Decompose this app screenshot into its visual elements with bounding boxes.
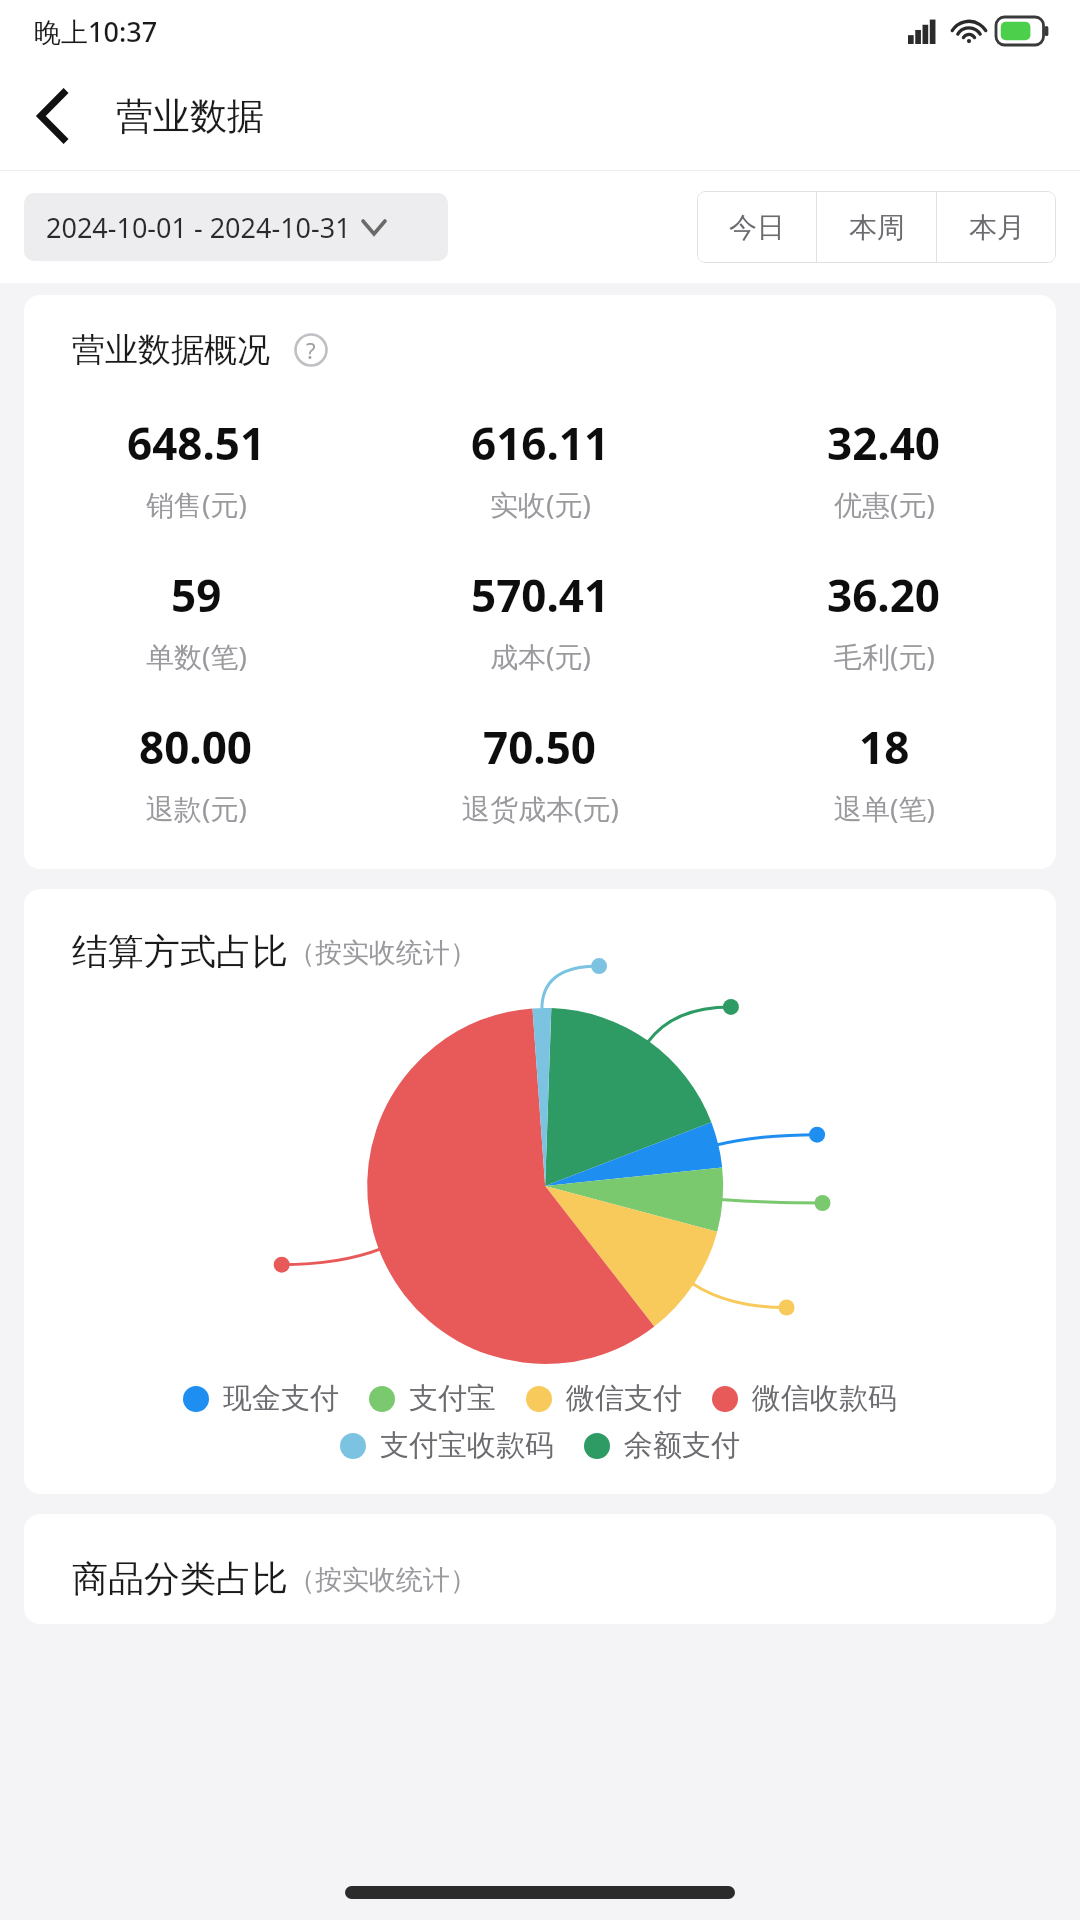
staticText: 80.00 xyxy=(139,717,253,777)
button[interactable]: 648.51 xyxy=(24,413,368,523)
staticText: 59 xyxy=(171,565,222,625)
staticText: 实收(元) xyxy=(490,485,591,523)
staticText: 648.51 xyxy=(127,413,266,473)
staticText: 616.11 xyxy=(471,413,610,473)
staticText: 毛利(元) xyxy=(834,637,935,675)
staticText: 36.20 xyxy=(827,565,941,625)
staticText: 余额支付 xyxy=(624,1427,740,1464)
staticText: 32.40 xyxy=(827,413,941,473)
staticText: 18 xyxy=(859,717,910,777)
staticText: 本月 xyxy=(969,210,1025,245)
staticText: 本周 xyxy=(849,210,905,245)
staticText: ? xyxy=(306,335,316,365)
button[interactable]: 微信支付 xyxy=(526,1380,682,1417)
button[interactable]: 今日 xyxy=(697,191,816,263)
staticText: 商品分类占比 xyxy=(72,1556,288,1601)
button[interactable]: 支付宝 xyxy=(369,1380,496,1417)
button[interactable]: 59 xyxy=(24,565,368,675)
button[interactable]: 18 xyxy=(712,717,1056,827)
staticText: 退货成本(元) xyxy=(462,789,619,827)
staticText: 今日 xyxy=(729,210,785,245)
staticText: 退款(元) xyxy=(146,789,247,827)
staticText: （按实收统计） xyxy=(288,936,477,970)
button[interactable]: 80.00 xyxy=(24,717,368,827)
button[interactable]: 570.41 xyxy=(368,565,712,675)
staticText: 70.50 xyxy=(483,717,597,777)
staticText: （按实收统计） xyxy=(288,1563,477,1597)
button[interactable]: 36.20 xyxy=(712,565,1056,675)
staticText: 晚上10:37 xyxy=(34,13,158,50)
staticText: 支付宝收款码 xyxy=(380,1427,554,1464)
staticText: 退单(笔) xyxy=(834,789,935,827)
button[interactable]: 返回 xyxy=(16,78,92,154)
staticText: 微信收款码 xyxy=(752,1380,897,1417)
staticText: 570.41 xyxy=(471,565,610,625)
button[interactable]: 616.11 xyxy=(368,413,712,523)
button[interactable]: 本周 xyxy=(817,191,936,263)
staticText: 2024-10-01 - 2024-10-31 xyxy=(46,209,351,246)
button[interactable]: 32.40 xyxy=(712,413,1056,523)
staticText: 营业数据概况 xyxy=(72,329,270,371)
staticText: 微信支付 xyxy=(566,1380,682,1417)
staticText: 销售(元) xyxy=(146,485,247,523)
button[interactable]: 70.50 xyxy=(368,717,712,827)
staticText: 结算方式占比 xyxy=(72,929,288,974)
staticText: 营业数据 xyxy=(116,93,264,140)
staticText: 优惠(元) xyxy=(834,485,935,523)
button[interactable]: 说明 xyxy=(294,333,328,367)
button[interactable]: 支付宝收款码 xyxy=(340,1427,554,1464)
button[interactable]: 微信收款码 xyxy=(712,1380,897,1417)
staticText: 现金支付 xyxy=(223,1380,339,1417)
button[interactable]: 现金支付 xyxy=(183,1380,339,1417)
button[interactable]: 本月 xyxy=(937,191,1056,263)
button[interactable]: 余额支付 xyxy=(584,1427,740,1464)
staticText: 单数(笔) xyxy=(146,637,247,675)
staticText: 成本(元) xyxy=(490,637,591,675)
staticText: 支付宝 xyxy=(409,1380,496,1417)
button[interactable]: 2024-10-01 - 2024-10-31 xyxy=(24,193,448,261)
